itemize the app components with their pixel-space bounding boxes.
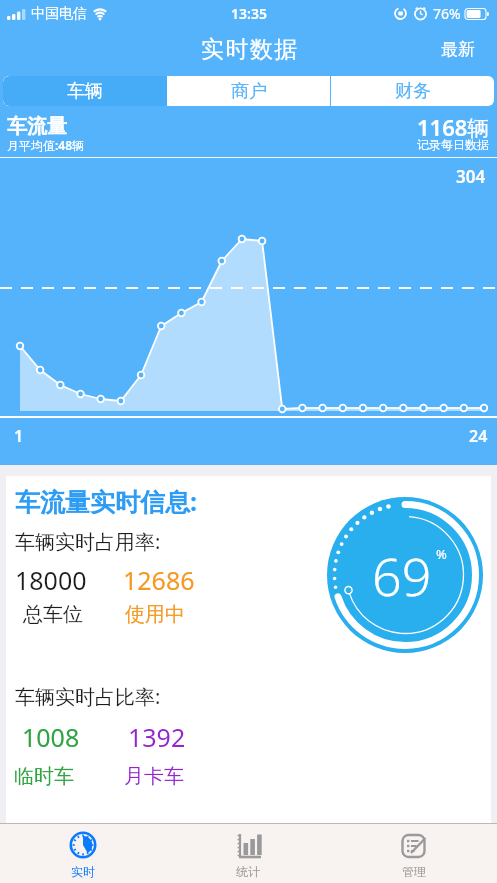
staticText: 车辆实时占比率:	[15, 683, 161, 710]
staticText: 使用中	[125, 602, 185, 627]
staticText: %	[436, 545, 447, 563]
staticText: 商户	[231, 80, 267, 103]
staticText: 车流量	[7, 114, 67, 139]
staticText: 车辆	[67, 80, 103, 103]
staticText: 财务	[395, 80, 431, 103]
staticText: 最新	[441, 39, 475, 60]
staticText: 月平均值:48辆	[7, 137, 85, 153]
staticText: 实时	[71, 864, 95, 879]
staticText: 1392	[128, 720, 186, 754]
staticText: 中国电信	[31, 5, 87, 23]
staticText: 车流量实时信息:	[15, 484, 198, 518]
staticText: 1168辆	[417, 112, 490, 142]
staticText: 实时数据	[200, 35, 298, 64]
button[interactable]: 管理	[331, 824, 497, 883]
staticText: 管理	[402, 864, 426, 879]
staticText: 13:35	[231, 4, 267, 23]
staticText: 69	[372, 540, 432, 611]
staticText: 24	[469, 425, 488, 447]
staticText: 月卡车	[124, 764, 184, 789]
button[interactable]: 商户	[167, 76, 330, 106]
staticText: 76%	[433, 4, 461, 23]
staticText: 18000	[15, 563, 87, 597]
staticText: 1008	[22, 720, 80, 754]
button[interactable]: 财务	[331, 76, 494, 106]
button[interactable]: 统计	[165, 824, 331, 883]
staticText: 总车位	[23, 602, 83, 627]
staticText: 车辆实时占用率:	[15, 528, 161, 555]
button[interactable]: 实时	[0, 824, 165, 883]
button[interactable]: 车辆	[3, 76, 167, 106]
staticText: 统计	[236, 864, 260, 879]
staticText: 12686	[123, 563, 195, 597]
staticText: 304	[456, 165, 486, 188]
staticText: 记录每日数据	[417, 137, 489, 152]
button[interactable]: 最新	[433, 31, 497, 68]
staticText: 临时车	[14, 764, 74, 789]
staticText: 1	[14, 425, 24, 447]
